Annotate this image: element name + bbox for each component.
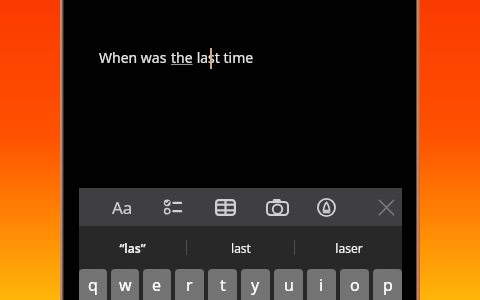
staticText: r (186, 274, 193, 296)
button[interactable]: Camera (260, 188, 294, 226)
button[interactable]: q (79, 269, 107, 300)
staticText: Aa (112, 196, 133, 219)
staticText: u (284, 274, 294, 296)
button[interactable]: Close keyboard (369, 188, 403, 226)
staticText: w (119, 274, 132, 296)
staticText: q (88, 274, 98, 296)
button[interactable]: o (340, 269, 369, 300)
staticText: last time (193, 48, 254, 67)
button[interactable]: w (111, 269, 139, 300)
button[interactable]: r (175, 269, 204, 300)
staticText: i (319, 274, 324, 296)
button[interactable]: last (187, 226, 294, 269)
staticText: p (383, 274, 393, 296)
button[interactable]: p (373, 269, 402, 300)
button[interactable]: i (307, 269, 336, 300)
staticText: o (350, 274, 360, 296)
staticText: “las” (119, 240, 146, 256)
staticText: When was (99, 48, 171, 67)
staticText: laser (335, 240, 363, 256)
staticText: the (171, 48, 193, 67)
button[interactable]: laser (295, 226, 402, 269)
button[interactable]: Text format (105, 188, 139, 226)
button[interactable]: e (143, 269, 171, 300)
staticText: e (152, 274, 162, 296)
staticText: y (251, 274, 260, 296)
staticText: last (231, 240, 251, 256)
button[interactable]: “las” (79, 226, 186, 269)
button[interactable]: t (208, 269, 237, 300)
button[interactable]: Table (208, 188, 242, 226)
button[interactable]: Markup (309, 188, 343, 226)
button[interactable]: y (241, 269, 270, 300)
staticText: t (220, 274, 226, 296)
button[interactable]: u (274, 269, 303, 300)
button[interactable]: Checklist (155, 188, 189, 226)
